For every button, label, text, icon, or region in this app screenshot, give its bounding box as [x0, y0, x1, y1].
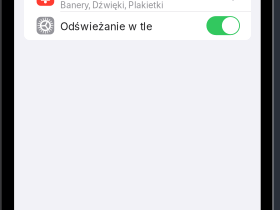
- staticText: Banery, Dźwięki, Plakietki: [60, 0, 163, 10]
- button[interactable]: Banery, Dźwięki, Plakietki: [24, 0, 251, 11]
- staticText: Odświeżanie w tle: [60, 20, 152, 33]
- button[interactable]: Odświeżanie w tle: [24, 11, 251, 40]
